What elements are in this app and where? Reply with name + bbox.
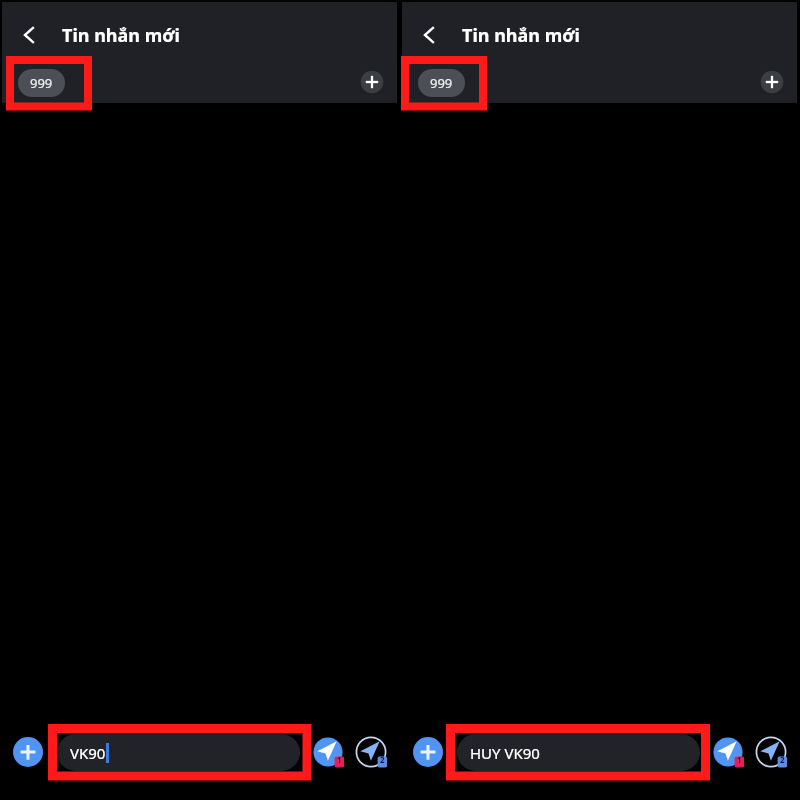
staticText: 999 <box>30 74 53 92</box>
button[interactable]: Add recipient <box>356 66 388 98</box>
staticText: 2 <box>780 754 785 765</box>
button[interactable]: 999 <box>18 69 65 97</box>
button[interactable]: Back <box>8 13 52 57</box>
staticText: VK90 <box>70 743 106 763</box>
button[interactable]: Send message option 1 <box>310 734 346 770</box>
button[interactable]: Send message option 1 <box>710 734 746 770</box>
button[interactable]: Attach <box>413 737 443 767</box>
staticText: 1 <box>337 754 342 765</box>
staticText: Tin nhắn mới <box>62 23 180 48</box>
button[interactable]: Send message option 2 <box>353 734 389 770</box>
staticText: HUY VK90 <box>470 743 540 763</box>
staticText: 999 <box>430 74 453 92</box>
button[interactable]: Attach <box>13 737 43 767</box>
button[interactable]: VK90 <box>57 734 300 771</box>
button[interactable]: Back <box>408 13 452 57</box>
staticText: Tin nhắn mới <box>462 23 580 48</box>
button[interactable]: Send message option 2 <box>753 734 789 770</box>
staticText: 2 <box>380 754 385 765</box>
button[interactable]: 999 <box>418 69 465 97</box>
staticText: 1 <box>737 754 742 765</box>
button[interactable]: Add recipient <box>756 66 788 98</box>
button[interactable]: HUY VK90 <box>457 734 700 771</box>
